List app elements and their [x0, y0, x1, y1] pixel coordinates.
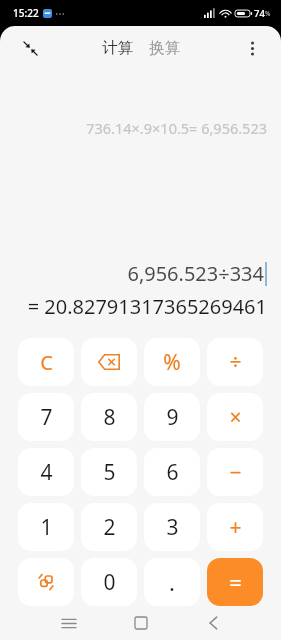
button[interactable]: Scientific calculator — [18, 558, 74, 606]
staticText: 1 — [40, 513, 53, 542]
staticText: 0 — [103, 568, 116, 597]
staticText: − — [229, 458, 242, 487]
staticText: + — [229, 513, 242, 542]
button[interactable]: 4 — [18, 448, 74, 496]
staticText: 15:22 — [13, 6, 39, 20]
staticText: 9 — [166, 403, 179, 432]
staticText: 7 — [40, 403, 53, 432]
button[interactable]: . — [144, 558, 200, 606]
button[interactable]: 9 — [144, 393, 200, 441]
staticText: ÷ — [229, 348, 242, 377]
button[interactable]: 计算 — [100, 34, 135, 62]
button[interactable]: = — [207, 558, 263, 606]
button[interactable]: 8 — [81, 393, 137, 441]
button[interactable]: Backspace — [81, 338, 137, 386]
staticText: 6,956.523÷334 — [127, 260, 264, 287]
staticText: = — [229, 567, 242, 597]
staticText: 74 — [254, 7, 265, 20]
button[interactable]: Collapse — [14, 32, 46, 64]
button[interactable]: 0 — [81, 558, 137, 606]
button[interactable]: Recent apps — [52, 606, 86, 640]
staticText: 2 — [103, 513, 116, 542]
staticText: 736.14×.9×10.5= 6,956.523 — [86, 118, 267, 138]
button[interactable]: 6 — [144, 448, 200, 496]
staticText: 6 — [166, 458, 179, 487]
button[interactable]: − — [207, 448, 263, 496]
staticText: 5 — [103, 458, 116, 487]
button[interactable]: More options — [237, 33, 267, 63]
staticText: 3 — [166, 513, 179, 542]
button[interactable]: 2 — [81, 503, 137, 551]
staticText: . — [169, 567, 175, 597]
staticText: = 20.82791317365269461 — [27, 293, 267, 320]
button[interactable]: Back — [196, 606, 230, 640]
button[interactable]: 3 — [144, 503, 200, 551]
staticText: 计算 — [102, 38, 133, 58]
button[interactable]: 换算 — [147, 34, 182, 62]
staticText: % — [163, 348, 181, 377]
button[interactable]: C — [18, 338, 74, 386]
button[interactable]: Home — [124, 606, 158, 640]
staticText: 换算 — [149, 38, 180, 58]
button[interactable]: % — [144, 338, 200, 386]
staticText: 8 — [103, 403, 116, 432]
button[interactable]: 1 — [18, 503, 74, 551]
button[interactable]: 5 — [81, 448, 137, 496]
staticText: × — [229, 403, 242, 432]
button[interactable]: 7 — [18, 393, 74, 441]
button[interactable]: + — [207, 503, 263, 551]
staticText: 4 — [40, 458, 53, 487]
staticText: C — [40, 349, 53, 376]
button[interactable]: ÷ — [207, 338, 263, 386]
staticText: % — [265, 9, 271, 18]
button[interactable]: × — [207, 393, 263, 441]
